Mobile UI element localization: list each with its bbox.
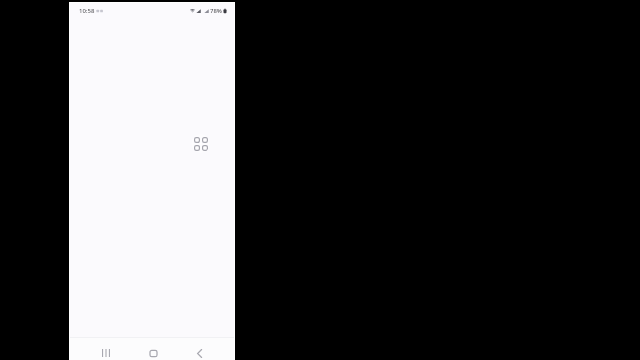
button[interactable]: Home [143, 345, 163, 360]
button[interactable]: Back [189, 345, 209, 360]
button[interactable]: Recent apps [96, 345, 116, 360]
staticText: 10:58 [79, 7, 95, 15]
button[interactable]: Apps [191, 134, 210, 153]
staticText: 78% [210, 7, 222, 15]
